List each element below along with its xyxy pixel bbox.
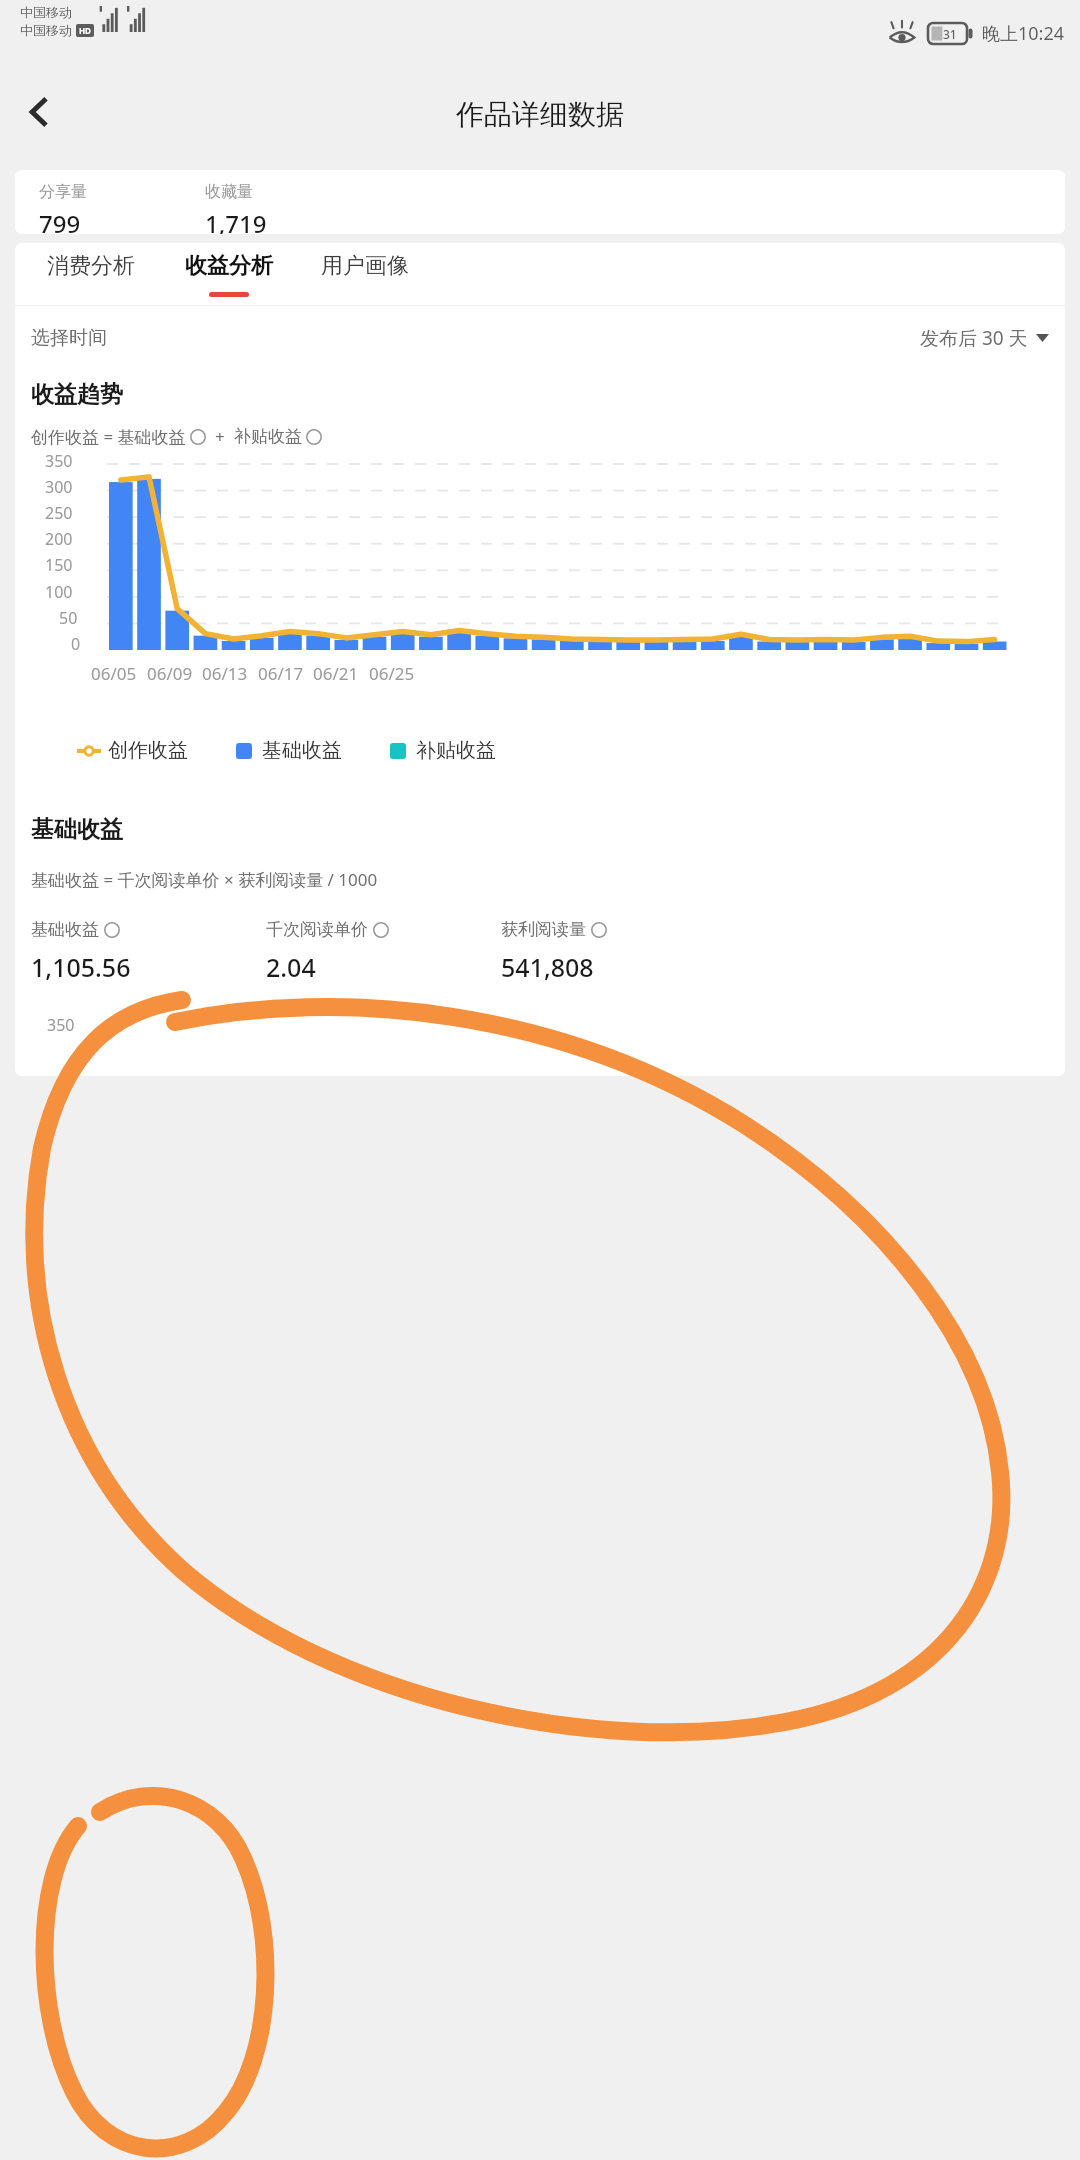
staticText: 2.04: [266, 950, 316, 984]
staticText: HD: [79, 25, 91, 36]
staticText: 收益趋势: [31, 380, 123, 409]
staticText: 选择时间: [31, 326, 107, 350]
staticText: 06/05: [91, 662, 137, 685]
staticText: 收藏量: [205, 182, 253, 202]
staticText: 消费分析: [47, 252, 135, 280]
staticText: 799: [39, 207, 81, 234]
staticText: 用户画像: [321, 252, 409, 280]
staticText: 千次阅读单价: [266, 919, 368, 940]
staticText: 作品详细数据: [456, 97, 624, 132]
button[interactable]: 分享量: [15, 170, 1065, 234]
staticText: 基础收益 = 千次阅读单价 × 获利阅读量 / 1000: [31, 868, 378, 891]
button[interactable]: 消费分析: [47, 243, 135, 305]
button[interactable]: 用户画像: [321, 243, 409, 305]
staticText: 1,719: [205, 207, 267, 234]
staticText: 06/25: [369, 662, 415, 685]
staticText: 06/09: [147, 662, 193, 685]
staticText: 分享量: [39, 182, 87, 202]
staticText: 收益分析: [185, 252, 273, 280]
staticText: 100: [45, 581, 73, 603]
staticText: 基础收益: [31, 919, 99, 940]
staticText: 补贴收益: [234, 426, 302, 447]
staticText: 300: [45, 476, 73, 498]
staticText: 350: [47, 1014, 75, 1036]
staticText: 350: [45, 450, 73, 472]
staticText: 1,105.56: [31, 950, 131, 984]
staticText: 中国移动: [20, 22, 72, 38]
staticText: 基础收益: [262, 738, 342, 763]
staticText: 补贴收益: [416, 738, 496, 763]
staticText: 发布后 30 天: [920, 325, 1028, 351]
staticText: 200: [45, 528, 73, 550]
staticText: 150: [45, 554, 73, 576]
staticText: 0: [71, 633, 81, 655]
staticText: 250: [45, 502, 73, 524]
staticText: 31: [943, 26, 957, 42]
button[interactable]: Back: [12, 84, 68, 140]
staticText: +: [215, 425, 225, 448]
staticText: 创作收益 = 基础收益: [31, 425, 186, 448]
staticText: 获利阅读量: [501, 919, 586, 940]
staticText: 基础收益: [31, 815, 123, 844]
staticText: 541,808: [501, 950, 594, 984]
staticText: 06/13: [202, 662, 248, 685]
staticText: 06/21: [313, 662, 359, 685]
staticText: 晚上10:24: [982, 21, 1065, 46]
staticText: 50: [59, 607, 78, 629]
button[interactable]: 收益分析: [185, 243, 273, 305]
staticText: 创作收益: [108, 738, 188, 763]
button[interactable]: 选择时间: [31, 306, 1049, 370]
staticText: 06/17: [258, 662, 304, 685]
staticText: 中国移动: [20, 4, 72, 20]
